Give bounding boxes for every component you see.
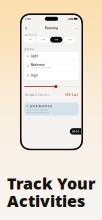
staticText: 60 min [68,39,72,41]
staticText: Track Your [7,173,96,194]
staticText: Activities [7,190,85,211]
staticText: Steady pace, even breathing [31,67,51,69]
staticText: the week before. Keep the pace up. [26,112,49,114]
button[interactable]: 15 min [23,37,36,43]
staticText: 9:41 [25,17,32,20]
button[interactable]: 30 min [37,37,49,43]
staticText: Latest Summary [30,104,52,108]
button[interactable]: Done [70,128,85,135]
staticText: 45 min [54,39,58,41]
staticText: Light [31,54,38,58]
staticText: Activity [24,47,33,51]
button[interactable]: High [24,71,79,80]
staticText: Estimated Calories [25,93,49,97]
button[interactable]: 60 min [64,37,76,43]
staticText: Duration [24,33,37,36]
staticText: Done [72,130,80,133]
staticText: 380 kcal [65,93,78,97]
staticText: Your last run was 12% faster than [26,109,48,111]
staticText: 30 min [41,39,45,41]
staticText: Running [45,26,58,30]
staticText: High [31,74,38,77]
button[interactable]: More options [74,25,79,31]
staticText: 15 min [27,39,31,41]
button[interactable]: Light [24,52,79,61]
button[interactable]: 45 min [50,37,62,43]
button[interactable]: Back [24,25,29,31]
button[interactable]: Moderate [24,61,79,71]
staticText: Moderate [31,63,45,67]
